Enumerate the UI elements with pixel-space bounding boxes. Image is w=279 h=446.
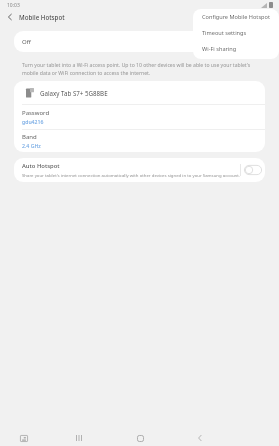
button[interactable]: Auto Hotspot [14, 158, 265, 182]
staticText: Configure Mobile Hotspot [202, 13, 270, 21]
button[interactable]: Wi-Fi sharing [193, 41, 279, 57]
staticText: gdu4216 [22, 118, 44, 125]
staticText: 10:03 [7, 2, 20, 9]
staticText: Share your tablet's internet connection … [22, 172, 240, 178]
staticText: Timeout settings [202, 29, 247, 37]
staticText: Auto Hotspot [22, 162, 60, 170]
staticText: 2.4 GHz [22, 142, 41, 149]
staticText: Galaxy Tab S7+ 5G88BE [40, 89, 108, 97]
button[interactable]: Password [14, 105, 265, 129]
staticText: Wi-Fi sharing [202, 45, 237, 53]
button[interactable]: Configure Mobile Hotspot [193, 9, 279, 25]
staticText: Band [22, 133, 37, 141]
staticText: Password [22, 109, 50, 117]
button[interactable]: Band [14, 130, 265, 152]
button[interactable]: Recent apps [69, 428, 89, 446]
button[interactable]: Back [190, 428, 210, 446]
button[interactable]: Home [130, 428, 150, 446]
button[interactable]: Keyboard [14, 428, 34, 446]
staticText: Mobile Hotspot [19, 13, 65, 21]
button[interactable]: Galaxy Tab S7+ 5G88BE [14, 81, 265, 104]
button[interactable]: Auto Hotspot toggle [244, 165, 262, 175]
button[interactable]: Back [0, 10, 19, 24]
staticText: Off [22, 38, 31, 46]
button[interactable]: Off [14, 31, 265, 52]
button[interactable]: Timeout settings [193, 25, 279, 41]
staticText: Turn your tablet into a Wi-Fi access poi… [22, 62, 261, 76]
